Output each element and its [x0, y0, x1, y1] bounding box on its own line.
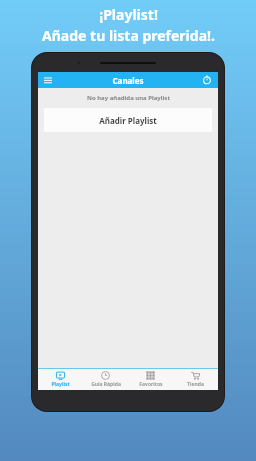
button[interactable]: Timer	[201, 74, 213, 86]
staticText: Tienda	[187, 381, 204, 388]
button[interactable]: Tienda	[173, 369, 218, 390]
staticText: Añade tu lista preferida!.	[42, 26, 215, 45]
button[interactable]: Menu	[42, 74, 54, 86]
staticText: Favoritos	[139, 381, 163, 388]
button[interactable]: Añadir Playlist	[44, 108, 212, 132]
button[interactable]: Favoritos	[128, 369, 173, 390]
staticText: ¡Playlist!	[99, 5, 158, 24]
button[interactable]: Playlist	[38, 369, 83, 390]
staticText: No hay añadida una Playlist	[87, 94, 170, 102]
staticText: Añadir Playlist	[99, 115, 157, 126]
staticText: Guía Rápida	[91, 381, 121, 388]
button[interactable]: Guía Rápida	[83, 369, 128, 390]
staticText: Canales	[112, 75, 144, 86]
staticText: Playlist	[51, 381, 70, 388]
